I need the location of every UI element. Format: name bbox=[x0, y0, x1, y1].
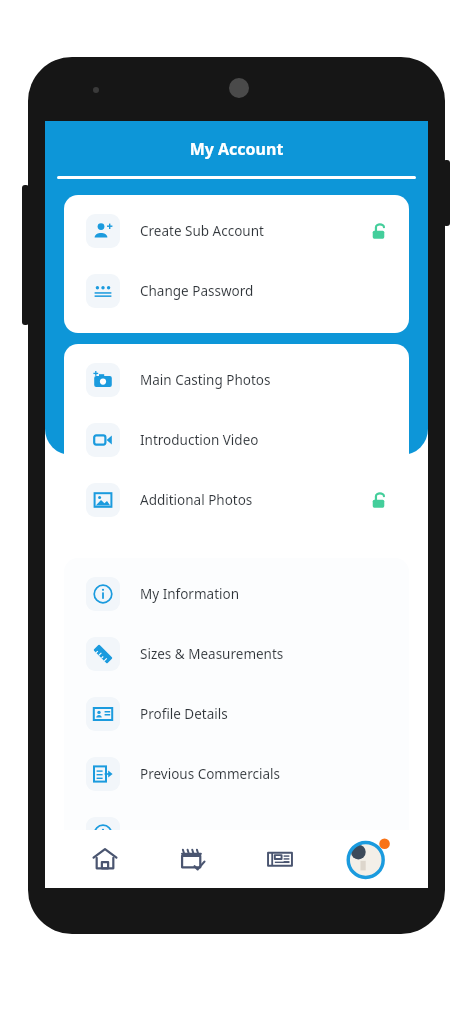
staticText: Sizes & Measurements bbox=[140, 645, 284, 663]
button[interactable]: My Information bbox=[64, 572, 409, 616]
button[interactable]: Profile Details bbox=[64, 692, 409, 736]
button[interactable]: Home bbox=[77, 831, 133, 887]
button[interactable]: Previous Commercials bbox=[64, 752, 409, 796]
staticText: Create Sub Account bbox=[140, 222, 264, 240]
button[interactable]: Profile bbox=[340, 831, 396, 887]
button[interactable]: Create Sub Account bbox=[64, 209, 409, 253]
staticText: Change Password bbox=[140, 282, 254, 300]
button[interactable]: News bbox=[252, 831, 308, 887]
button[interactable]: Change Password bbox=[64, 269, 409, 313]
staticText: Profile Details bbox=[140, 705, 228, 723]
button[interactable]: Introduction Video bbox=[64, 418, 409, 462]
button[interactable]: Main Casting Photos bbox=[64, 358, 409, 402]
staticText: My Account bbox=[45, 138, 428, 160]
staticText: Introduction Video bbox=[140, 431, 259, 449]
staticText: My Information bbox=[140, 585, 240, 603]
staticText: Additional Photos bbox=[140, 491, 253, 509]
button[interactable]: Additional Photos bbox=[64, 478, 409, 522]
button[interactable] bbox=[64, 812, 409, 856]
staticText: Main Casting Photos bbox=[140, 371, 271, 389]
button[interactable]: Sizes & Measurements bbox=[64, 632, 409, 676]
staticText: Previous Commercials bbox=[140, 765, 280, 783]
button[interactable]: Castings bbox=[165, 831, 221, 887]
